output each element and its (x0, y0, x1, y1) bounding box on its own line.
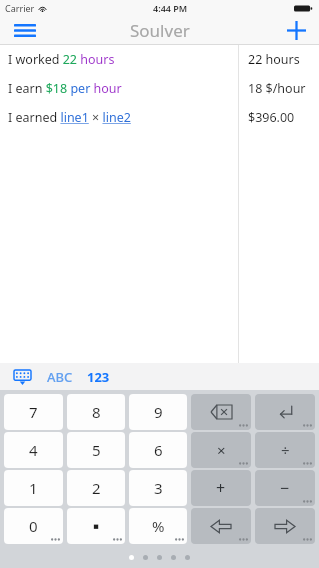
button[interactable]: 5 (67, 432, 125, 468)
staticText: 2 (92, 478, 101, 498)
button[interactable]: I earned line1 × line2 (0, 103, 319, 132)
staticText: 6 (154, 440, 163, 460)
staticText: $396.00 (248, 109, 295, 126)
staticText: ▪ (93, 521, 100, 531)
button[interactable]: Menu (7, 16, 43, 45)
staticText: 3 (154, 478, 163, 498)
staticText: 22 hours (248, 51, 300, 68)
staticText: 5 (92, 440, 101, 460)
button[interactable]: ABC (44, 365, 76, 389)
staticText: ABC (47, 368, 73, 386)
button[interactable]: 123 (84, 365, 113, 389)
button[interactable]: 7 (4, 394, 63, 430)
button[interactable]: Key (255, 394, 315, 430)
button[interactable]: Key (255, 508, 315, 544)
staticText: × (217, 440, 226, 460)
staticText: Soulver (130, 19, 190, 42)
button[interactable]: 6 (129, 432, 187, 468)
staticText: − (280, 477, 290, 499)
staticText: 123 (87, 368, 110, 386)
staticText: 8 (92, 402, 101, 422)
staticText: I worked 22 hours (8, 51, 115, 68)
button[interactable]: I earn $18 per hour (0, 74, 319, 103)
button[interactable]: Key (191, 432, 251, 468)
button[interactable]: Key (255, 470, 315, 506)
button[interactable]: Key (191, 508, 251, 544)
button[interactable]: 1 (4, 470, 63, 506)
button[interactable]: 4 (4, 432, 63, 468)
staticText: 0 (29, 516, 38, 536)
button[interactable]: Keyboard (10, 365, 34, 389)
button[interactable]: Key (191, 394, 251, 430)
button[interactable]: 3 (129, 470, 187, 506)
button[interactable]: 9 (129, 394, 187, 430)
button[interactable]: Key (191, 470, 251, 506)
staticText: 18 $/hour (248, 80, 306, 97)
button[interactable]: 0 (4, 508, 63, 544)
button[interactable]: Add line (278, 16, 314, 45)
staticText: 7 (29, 402, 38, 422)
button[interactable]: ▪ (67, 508, 125, 544)
staticText: 9 (154, 402, 163, 422)
button[interactable]: Key (255, 432, 315, 468)
staticText: I earned line1 × line2 (8, 109, 131, 126)
button[interactable]: I worked 22 hours (0, 45, 319, 74)
staticText: ÷ (281, 440, 290, 460)
button[interactable]: 8 (67, 394, 125, 430)
staticText: 4 (29, 440, 38, 460)
staticText: 1 (29, 478, 38, 498)
staticText: + (216, 477, 226, 499)
button[interactable]: % (129, 508, 187, 544)
staticText: 4:44 PM (153, 2, 188, 14)
staticText: Carrier (5, 2, 35, 14)
staticText: % (152, 516, 165, 536)
staticText: I earn $18 per hour (8, 80, 122, 97)
button[interactable]: 2 (67, 470, 125, 506)
